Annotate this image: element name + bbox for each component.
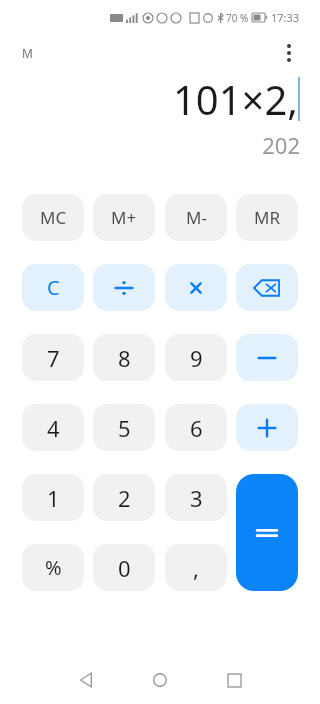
button[interactable]: More options <box>272 36 306 70</box>
button[interactable]: Multiply <box>165 264 227 311</box>
staticText: 9 <box>190 343 203 373</box>
button[interactable]: Backspace <box>236 264 298 311</box>
button[interactable]: Plus <box>236 404 298 451</box>
button[interactable]: Equals <box>236 474 298 591</box>
staticText: 202 <box>262 130 300 160</box>
staticText: 101×2, <box>172 72 298 126</box>
staticText: MR <box>254 206 280 229</box>
button[interactable]: MC <box>22 194 84 241</box>
staticText: 70 % <box>226 11 249 25</box>
button[interactable]: Minus <box>236 334 298 381</box>
button[interactable]: 5 <box>93 404 155 451</box>
staticText: M <box>22 45 33 61</box>
button[interactable]: 4 <box>22 404 84 451</box>
staticText: 2 <box>118 483 131 513</box>
button[interactable]: Home <box>123 658 197 702</box>
staticText: 8 <box>118 343 131 373</box>
staticText: 1 <box>47 483 60 513</box>
button[interactable]: M+ <box>93 194 155 241</box>
button[interactable]: 0 <box>93 544 155 591</box>
staticText: 4 <box>47 413 60 443</box>
button[interactable]: 1 <box>22 474 84 521</box>
staticText: , <box>193 553 199 583</box>
button[interactable]: C <box>22 264 84 311</box>
staticText: M+ <box>111 206 137 229</box>
button[interactable]: 8 <box>93 334 155 381</box>
button[interactable]: 6 <box>165 404 227 451</box>
button[interactable]: 2 <box>93 474 155 521</box>
button[interactable]: 7 <box>22 334 84 381</box>
button[interactable]: 9 <box>165 334 227 381</box>
staticText: 7 <box>47 343 60 373</box>
staticText: 17:33 <box>271 10 300 25</box>
button[interactable]: MR <box>236 194 298 241</box>
button[interactable]: Back <box>49 658 123 702</box>
button[interactable]: M- <box>165 194 227 241</box>
button[interactable]: Divide <box>93 264 155 311</box>
staticText: MC <box>40 206 67 229</box>
button[interactable]: Recents <box>197 658 271 702</box>
staticText: C <box>47 274 60 301</box>
staticText: 0 <box>118 553 131 583</box>
staticText: 5 <box>118 413 131 443</box>
button[interactable]: , <box>165 544 227 591</box>
staticText: % <box>45 554 62 581</box>
staticText: 3 <box>190 483 203 513</box>
button[interactable]: % <box>22 544 84 591</box>
button[interactable]: 3 <box>165 474 227 521</box>
staticText: M- <box>186 206 207 229</box>
staticText: 6 <box>190 413 203 443</box>
